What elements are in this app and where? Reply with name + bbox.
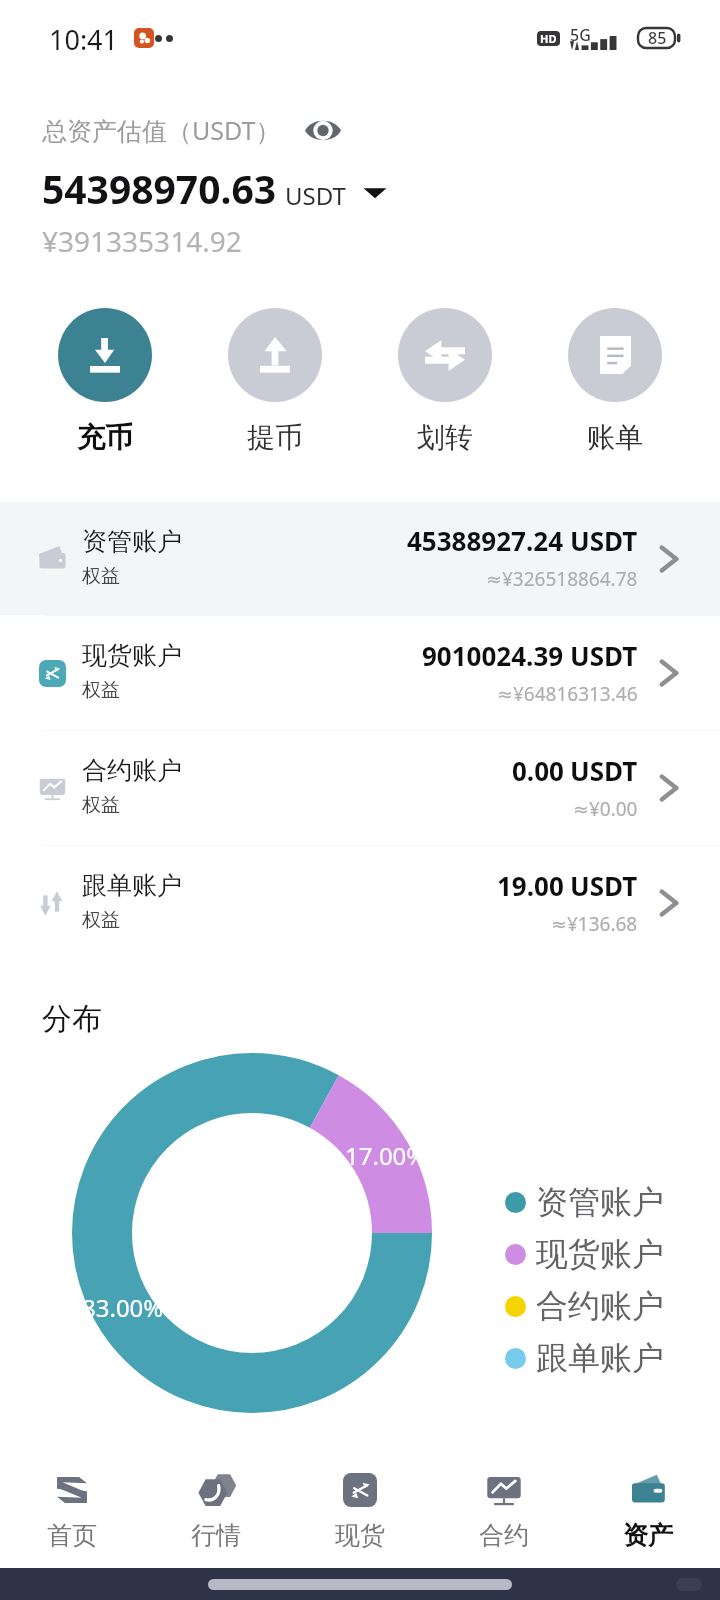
staticText: ≈¥136.68 bbox=[551, 911, 638, 937]
staticText: 85 bbox=[648, 27, 667, 49]
staticText: 83.00% bbox=[82, 1291, 164, 1324]
staticText: 合约 bbox=[479, 1520, 529, 1551]
staticText: USDT bbox=[285, 179, 346, 212]
staticText: 资管账户 bbox=[82, 526, 182, 557]
button[interactable]: Toggle balance visibility bbox=[303, 111, 343, 149]
staticText: 资产 bbox=[623, 1520, 673, 1551]
button[interactable]: 充币 bbox=[20, 308, 190, 455]
staticText: 合约账户 bbox=[536, 1286, 664, 1326]
staticText: 现货 bbox=[335, 1520, 385, 1551]
staticText: USDT bbox=[570, 523, 638, 558]
button[interactable]: 划转 bbox=[360, 308, 530, 455]
staticText: 合约账户 bbox=[82, 755, 182, 786]
staticText: 总资产估值（USDT） bbox=[42, 113, 281, 147]
staticText: ≈¥64816313.46 bbox=[497, 681, 638, 707]
staticText: 9010024.39 bbox=[422, 638, 564, 673]
staticText: 分布 bbox=[42, 1000, 102, 1038]
staticText: 现货账户 bbox=[536, 1234, 664, 1274]
staticText: 权益 bbox=[82, 678, 120, 702]
button[interactable]: 现货账户 bbox=[0, 616, 720, 730]
staticText: 54398970.63 bbox=[42, 162, 277, 215]
staticText: 资管账户 bbox=[536, 1182, 664, 1222]
staticText: 跟单账户 bbox=[82, 870, 182, 901]
staticText: USDT bbox=[570, 638, 638, 673]
button[interactable]: 现货 bbox=[288, 1451, 432, 1568]
staticText: 提币 bbox=[247, 420, 303, 455]
button[interactable]: 行情 bbox=[144, 1451, 288, 1568]
staticText: 账单 bbox=[587, 420, 643, 455]
button[interactable]: 资产 bbox=[576, 1451, 720, 1568]
staticText: 充币 bbox=[77, 420, 133, 455]
staticText: 19.00 bbox=[497, 868, 564, 903]
staticText: ≈¥0.00 bbox=[573, 796, 638, 822]
staticText: 现货账户 bbox=[82, 640, 182, 671]
staticText: 权益 bbox=[82, 564, 120, 588]
staticText: 划转 bbox=[417, 420, 473, 455]
button[interactable]: Change display currency bbox=[360, 177, 390, 207]
button[interactable]: 合约 bbox=[432, 1451, 576, 1568]
button[interactable]: 资管账户 bbox=[0, 502, 720, 615]
staticText: 跟单账户 bbox=[536, 1338, 664, 1378]
staticText: 权益 bbox=[82, 908, 120, 932]
staticText: ≈¥326518864.78 bbox=[486, 566, 638, 592]
staticText: 行情 bbox=[191, 1520, 241, 1551]
staticText: ¥391335314.92 bbox=[42, 222, 242, 260]
staticText: 5G bbox=[570, 24, 591, 46]
staticText: HD bbox=[540, 31, 557, 46]
staticText: USDT bbox=[570, 753, 638, 788]
staticText: 权益 bbox=[82, 793, 120, 817]
button[interactable]: 合约账户 bbox=[0, 731, 720, 845]
staticText: USDT bbox=[570, 868, 638, 903]
button[interactable]: 首页 bbox=[0, 1451, 144, 1568]
button[interactable]: 提币 bbox=[190, 308, 360, 455]
staticText: 0.00 bbox=[512, 753, 564, 788]
staticText: 10:41 bbox=[49, 21, 119, 58]
button[interactable]: 跟单账户 bbox=[0, 846, 720, 960]
staticText: 45388927.24 bbox=[407, 523, 564, 558]
staticText: 首页 bbox=[47, 1520, 97, 1551]
staticText: 17.00% bbox=[345, 1139, 427, 1172]
button[interactable]: 账单 bbox=[530, 308, 700, 455]
